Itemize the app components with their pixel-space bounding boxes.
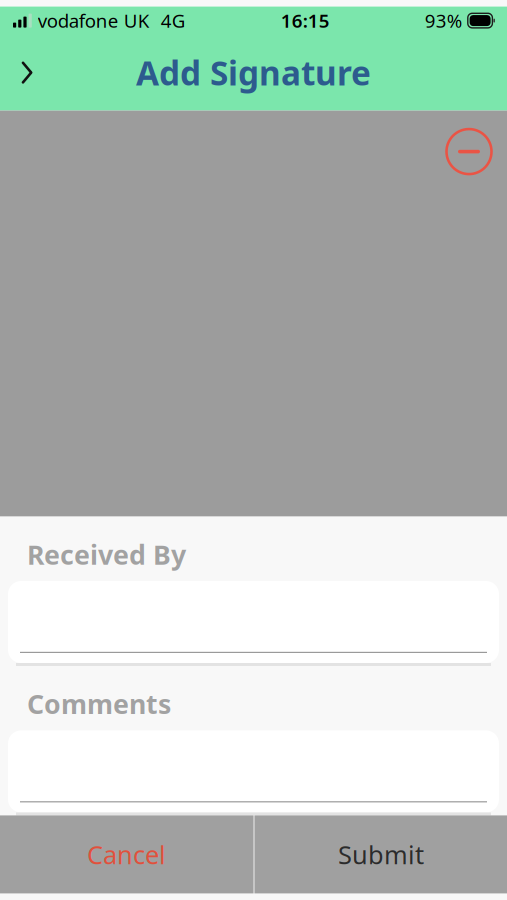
button[interactable]: Back — [0, 46, 54, 100]
button[interactable]: Cancel — [0, 815, 253, 893]
staticText: Received By — [27, 537, 186, 572]
staticText: 16:15 — [281, 8, 330, 33]
staticText: Cancel — [87, 838, 166, 871]
button[interactable]: Received By — [0, 581, 507, 663]
staticText: Add Signature — [136, 50, 371, 95]
button[interactable]: Submit — [255, 815, 507, 893]
button[interactable]: Comments — [0, 730, 507, 812]
staticText: Comments — [27, 686, 171, 721]
staticText: 4G — [161, 8, 186, 33]
staticText: Submit — [338, 838, 424, 871]
staticText: 93% — [425, 8, 463, 33]
staticText: vodafone UK — [38, 8, 150, 33]
button[interactable]: Clear signature — [442, 125, 496, 179]
